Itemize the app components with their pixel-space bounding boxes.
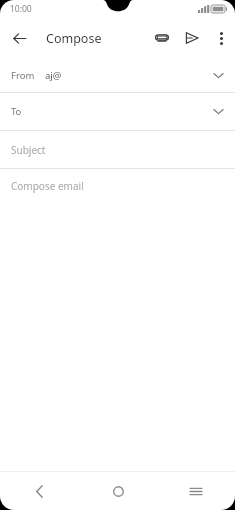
button[interactable]: Send xyxy=(177,23,207,53)
button[interactable]: More options xyxy=(207,24,235,52)
staticText: Compose xyxy=(46,30,102,47)
staticText: From xyxy=(11,69,35,82)
button[interactable]: Back xyxy=(0,472,79,510)
staticText: aj@ xyxy=(45,69,62,82)
button[interactable]: From xyxy=(0,58,235,92)
button[interactable]: Recent apps xyxy=(157,472,235,510)
button[interactable]: Attach file xyxy=(147,23,177,53)
button[interactable]: Subject xyxy=(0,131,235,168)
button[interactable]: Compose email xyxy=(0,169,235,207)
button[interactable]: Home xyxy=(79,472,157,510)
staticText: Compose email xyxy=(11,179,84,193)
button[interactable]: To xyxy=(0,93,235,130)
button[interactable]: Back xyxy=(0,19,38,57)
staticText: Subject xyxy=(11,143,46,157)
staticText: 10:00 xyxy=(10,3,32,15)
staticText: To xyxy=(11,105,22,118)
